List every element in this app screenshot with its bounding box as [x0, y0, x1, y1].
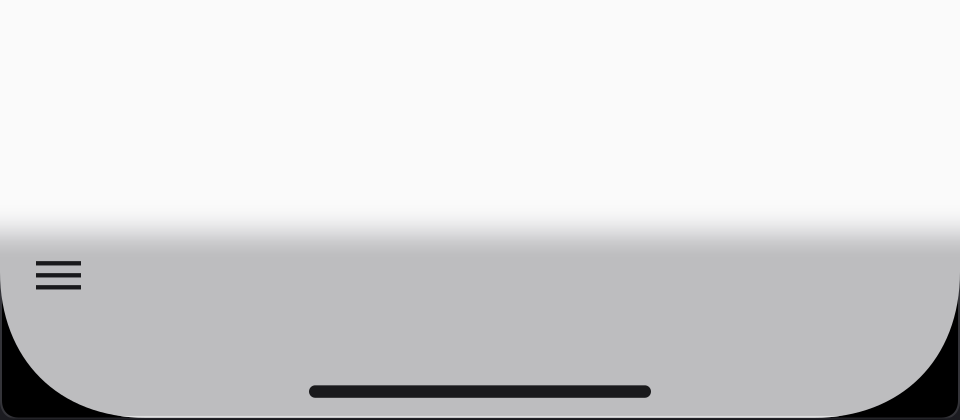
button[interactable]: Menu: [36, 261, 81, 290]
